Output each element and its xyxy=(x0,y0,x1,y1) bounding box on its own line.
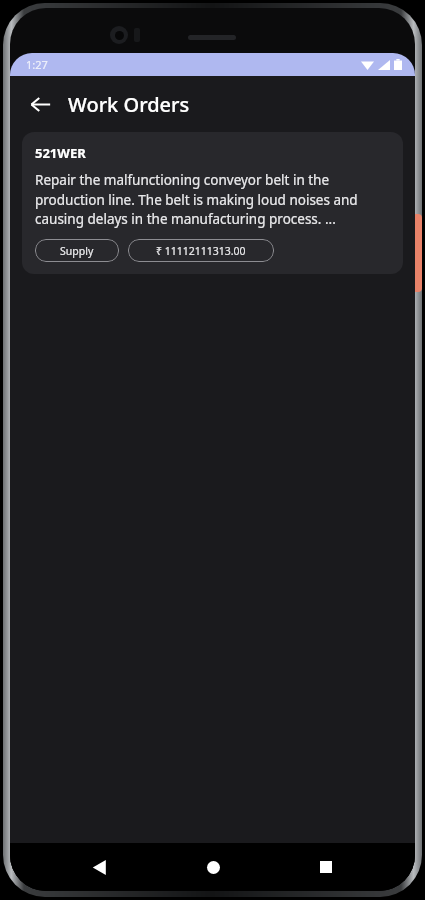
staticText: Work Orders xyxy=(68,91,190,118)
button[interactable]: Back xyxy=(18,82,62,126)
staticText: ₹ 11112111313.00 xyxy=(156,244,246,258)
button[interactable]: ₹ 11112111313.00 xyxy=(128,239,274,262)
button[interactable]: Back xyxy=(75,843,123,891)
button[interactable]: 521WER xyxy=(22,132,403,274)
staticText: Repair the malfunctioning conveyor belt … xyxy=(35,171,390,228)
staticText: 1:27 xyxy=(26,57,48,72)
button[interactable]: Recent apps xyxy=(302,843,350,891)
button[interactable]: Home xyxy=(189,843,237,891)
staticText: 521WER xyxy=(35,144,86,162)
button[interactable]: Supply xyxy=(35,239,119,262)
staticText: Supply xyxy=(60,244,94,258)
